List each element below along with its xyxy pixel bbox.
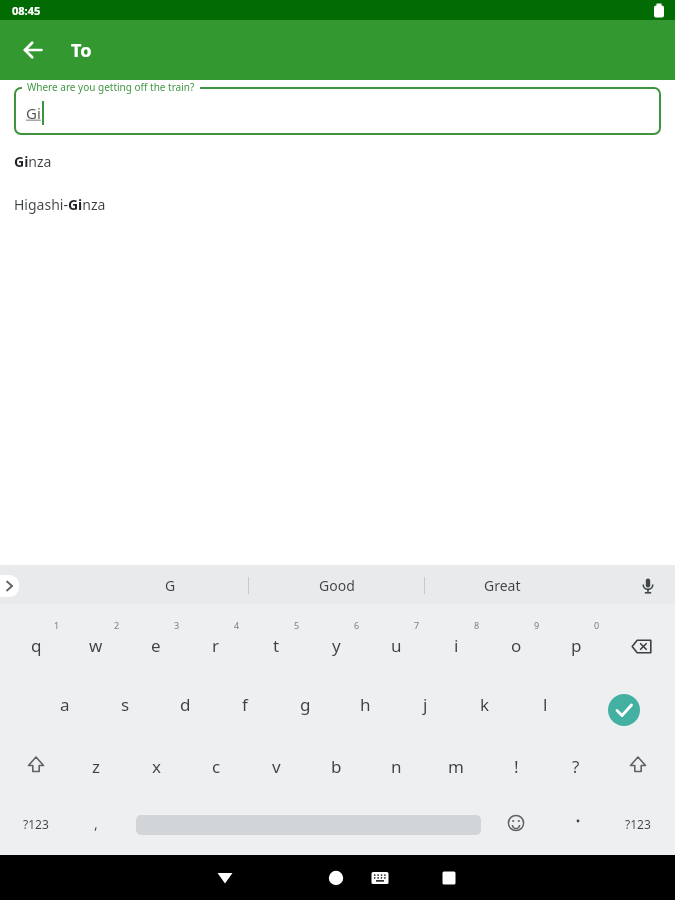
button[interactable]: Good xyxy=(277,566,397,605)
staticText: v xyxy=(272,755,281,778)
button[interactable]: z xyxy=(68,741,124,791)
staticText: 9 xyxy=(534,619,540,631)
staticText: b xyxy=(331,755,342,778)
button[interactable] xyxy=(617,624,665,668)
staticText: h xyxy=(360,693,371,716)
staticText: 6 xyxy=(354,619,360,631)
staticText: ?123 xyxy=(625,816,651,832)
button[interactable]: i xyxy=(428,620,484,670)
staticText: a xyxy=(60,693,70,716)
button[interactable]: s xyxy=(97,679,153,729)
staticText: 1 xyxy=(54,619,60,631)
button[interactable] xyxy=(364,855,396,900)
staticText: Great xyxy=(484,576,521,595)
staticText: 0 xyxy=(594,619,600,631)
staticText: 7 xyxy=(414,619,420,631)
button[interactable]: Gi xyxy=(26,100,44,126)
button[interactable]: x xyxy=(128,741,184,791)
staticText: e xyxy=(151,634,161,657)
staticText: 2 xyxy=(114,619,120,631)
button[interactable] xyxy=(14,34,46,66)
button[interactable]: w xyxy=(68,620,124,670)
staticText: ? xyxy=(572,755,580,778)
staticText: Where are you getting off the train? xyxy=(27,80,195,94)
staticText: ?123 xyxy=(23,816,49,832)
staticText: r xyxy=(212,634,220,657)
staticText: d xyxy=(180,693,191,716)
button[interactable]: q xyxy=(8,620,64,670)
button[interactable]: y xyxy=(308,620,364,670)
button[interactable] xyxy=(634,572,662,600)
button[interactable]: u xyxy=(368,620,424,670)
button[interactable] xyxy=(203,855,247,900)
button[interactable] xyxy=(12,743,60,787)
button[interactable]: j xyxy=(397,679,453,729)
staticText: q xyxy=(31,634,42,657)
button[interactable]: a xyxy=(37,679,93,729)
button[interactable]: G xyxy=(125,566,215,605)
staticText: p xyxy=(571,634,582,657)
button[interactable]: ? xyxy=(548,741,604,791)
button[interactable]: ! xyxy=(488,741,544,791)
staticText: w xyxy=(89,634,103,657)
staticText: z xyxy=(92,755,100,778)
button[interactable]: l xyxy=(517,679,573,729)
staticText: u xyxy=(391,634,402,657)
button[interactable] xyxy=(608,694,640,726)
button[interactable]: p xyxy=(548,620,604,670)
staticText: To xyxy=(71,38,92,63)
staticText: m xyxy=(448,755,464,778)
button[interactable]: v xyxy=(248,741,304,791)
button[interactable] xyxy=(558,799,598,843)
button[interactable]: , xyxy=(76,801,116,845)
staticText: g xyxy=(300,693,311,716)
staticText: Good xyxy=(319,576,355,595)
staticText: , xyxy=(94,814,98,833)
staticText: Higashi-Ginza xyxy=(14,195,106,214)
staticText: G xyxy=(165,576,176,595)
button[interactable]: d xyxy=(157,679,213,729)
button[interactable]: ?123 xyxy=(610,802,666,846)
staticText: x xyxy=(152,755,161,778)
staticText: s xyxy=(121,693,130,716)
staticText: c xyxy=(212,755,221,778)
staticText: Gi xyxy=(26,103,41,123)
staticText: j xyxy=(423,693,428,716)
staticText: o xyxy=(511,634,522,657)
button[interactable]: Great xyxy=(442,566,562,605)
staticText: l xyxy=(543,693,548,716)
staticText: 8 xyxy=(474,619,480,631)
staticText: 3 xyxy=(174,619,180,631)
staticText: f xyxy=(242,693,248,716)
staticText: t xyxy=(273,634,280,657)
button[interactable]: t xyxy=(248,620,304,670)
button[interactable]: ?123 xyxy=(8,802,64,846)
button[interactable] xyxy=(314,855,358,900)
staticText: 4 xyxy=(234,619,240,631)
button[interactable] xyxy=(498,805,534,841)
button[interactable]: g xyxy=(277,679,333,729)
button[interactable]: r xyxy=(188,620,244,670)
button[interactable]: n xyxy=(368,741,424,791)
staticText: 5 xyxy=(294,619,300,631)
button[interactable]: k xyxy=(457,679,513,729)
button[interactable] xyxy=(614,743,662,787)
staticText: k xyxy=(480,693,490,716)
button[interactable] xyxy=(427,855,471,900)
button[interactable]: m xyxy=(428,741,484,791)
button[interactable]: c xyxy=(188,741,244,791)
button[interactable]: b xyxy=(308,741,364,791)
button[interactable]: Higashi-Ginza xyxy=(0,185,675,223)
button[interactable] xyxy=(0,575,19,597)
button[interactable]: o xyxy=(488,620,544,670)
staticText: i xyxy=(454,634,459,657)
staticText: n xyxy=(391,755,402,778)
button[interactable]: e xyxy=(128,620,184,670)
staticText: ! xyxy=(514,755,519,778)
button[interactable]: h xyxy=(337,679,393,729)
staticText: Ginza xyxy=(14,152,52,171)
button[interactable]: Ginza xyxy=(0,142,675,180)
staticText: y xyxy=(332,634,341,657)
button[interactable]: f xyxy=(217,679,273,729)
